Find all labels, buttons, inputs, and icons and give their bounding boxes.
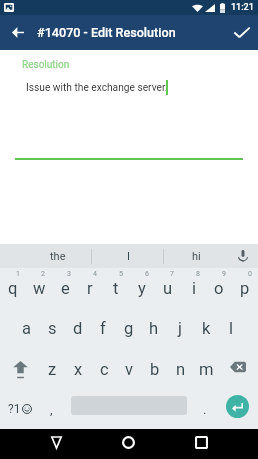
staticText: 3	[67, 270, 71, 278]
staticText: Issue with the exchange server.	[26, 82, 168, 94]
staticText: h	[149, 319, 159, 338]
staticText: o	[214, 279, 224, 298]
button[interactable]: Back	[34, 429, 78, 459]
button[interactable]: s	[39, 308, 65, 348]
staticText: m	[199, 360, 214, 379]
staticText: d	[73, 319, 83, 338]
button[interactable]: Back	[3, 15, 32, 50]
staticText: ?1	[8, 402, 21, 416]
button[interactable]: Home	[106, 429, 150, 459]
button[interactable]: k	[193, 308, 219, 348]
button[interactable]: Recents	[179, 429, 223, 459]
button[interactable]: j	[167, 308, 193, 348]
staticText: k	[202, 319, 211, 338]
button[interactable]: Voice input	[228, 244, 258, 268]
button[interactable]: b	[142, 349, 168, 389]
button[interactable]: c	[91, 349, 117, 389]
button[interactable]: u	[155, 268, 181, 308]
staticText: 4	[93, 270, 97, 278]
button[interactable]: .	[194, 389, 216, 429]
button[interactable]: i	[181, 268, 207, 308]
button[interactable]: Symbols	[0, 389, 39, 429]
staticText: I	[127, 250, 130, 263]
staticText: x	[74, 360, 83, 379]
staticText: q	[8, 279, 18, 298]
staticText: 8	[196, 270, 200, 278]
button[interactable]: x	[65, 349, 91, 389]
button[interactable]: r	[77, 268, 103, 308]
button[interactable]: Save	[226, 15, 258, 50]
staticText: hi	[192, 250, 201, 263]
button[interactable]: e	[52, 268, 78, 308]
staticText: w	[33, 279, 46, 298]
staticText: z	[48, 360, 57, 379]
staticText: b	[150, 360, 160, 379]
staticText: 7	[170, 270, 174, 278]
staticText: the	[50, 250, 66, 263]
staticText: i	[192, 279, 197, 298]
button[interactable]: w	[26, 268, 52, 308]
staticText: n	[176, 360, 186, 379]
staticText: u	[163, 279, 173, 298]
button[interactable]: hi	[168, 244, 224, 268]
button[interactable]: m	[193, 349, 219, 389]
staticText: v	[125, 360, 133, 379]
button[interactable]: Backspace	[219, 349, 258, 389]
button[interactable]: Shift	[0, 349, 39, 389]
staticText: Resolution	[22, 59, 70, 71]
button[interactable]: f	[90, 308, 116, 348]
staticText: s	[48, 319, 57, 338]
staticText: #14070 - Edit Resolution	[37, 25, 176, 40]
staticText: a	[22, 319, 31, 338]
button[interactable]: a	[13, 308, 39, 348]
staticText: e	[61, 279, 70, 298]
staticText: 11:21	[231, 2, 254, 13]
staticText: c	[100, 360, 109, 379]
button[interactable]: l	[218, 308, 244, 348]
staticText: g	[124, 319, 134, 338]
staticText: 9	[222, 270, 226, 278]
button[interactable]: t	[103, 268, 129, 308]
button[interactable]: q	[0, 268, 26, 308]
staticText: 1	[16, 270, 20, 278]
staticText: .	[203, 402, 207, 417]
button[interactable]: o	[206, 268, 232, 308]
staticText: f	[100, 319, 106, 338]
staticText: p	[240, 279, 250, 298]
button[interactable]: n	[168, 349, 194, 389]
button[interactable]: I	[100, 244, 156, 268]
staticText: ,	[50, 402, 53, 417]
staticText: j	[178, 319, 182, 338]
button[interactable]: h	[141, 308, 167, 348]
staticText: 6	[145, 270, 149, 278]
staticText: 0	[248, 270, 252, 278]
button[interactable]: y	[129, 268, 155, 308]
button[interactable]: Enter	[226, 395, 249, 418]
button[interactable]: v	[116, 349, 142, 389]
button[interactable]: g	[116, 308, 142, 348]
button[interactable]: z	[39, 349, 65, 389]
staticText: l	[229, 319, 234, 338]
staticText: 5	[119, 270, 123, 278]
button[interactable]: d	[65, 308, 91, 348]
button[interactable]: the	[30, 244, 86, 268]
button[interactable]: p	[232, 268, 258, 308]
staticText: r	[87, 279, 93, 298]
button[interactable]: ,	[40, 389, 62, 429]
staticText: y	[138, 279, 146, 298]
staticText: t	[113, 279, 119, 298]
staticText: 2	[41, 270, 45, 278]
